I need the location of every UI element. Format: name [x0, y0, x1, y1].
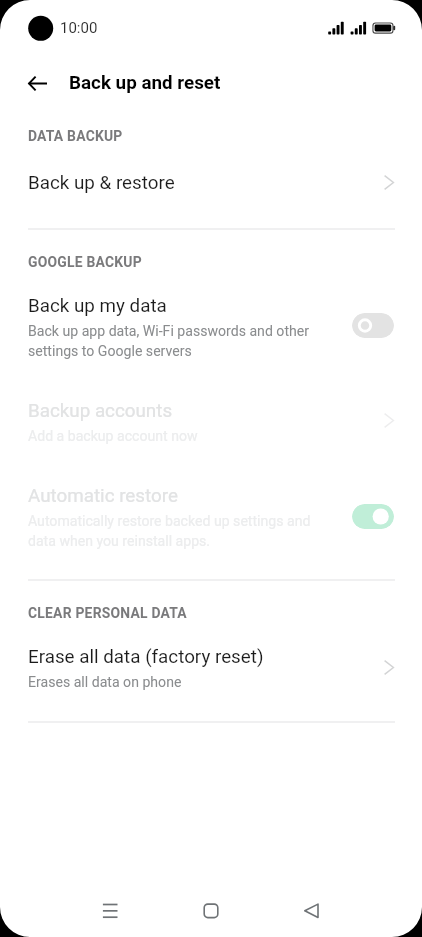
- button[interactable]: Back up my data: [0, 281, 422, 370]
- staticText: DATA BACKUP: [28, 128, 123, 144]
- staticText: Back up my data: [28, 295, 167, 317]
- staticText: GOOGLE BACKUP: [28, 254, 142, 270]
- staticText: Erase all data (factory reset): [28, 646, 264, 668]
- button[interactable]: Navigate up: [17, 63, 57, 103]
- button[interactable]: Backup accounts: [0, 383, 422, 458]
- staticText: Backup accounts: [28, 400, 173, 422]
- button[interactable]: Back: [281, 889, 341, 933]
- staticText: 10:00: [60, 19, 98, 37]
- button[interactable]: Back up & restore: [0, 155, 422, 208]
- button[interactable]: Recent apps: [80, 889, 140, 933]
- staticText: Back up app data, Wi-Fi passwords and ot…: [28, 323, 310, 360]
- button[interactable]: Erase all data (factory reset): [0, 630, 422, 704]
- button[interactable]: On: [352, 504, 394, 529]
- staticText: Back up & restore: [28, 172, 175, 194]
- staticText: Back up and reset: [69, 72, 221, 94]
- staticText: Automatically restore backed up settings…: [28, 513, 311, 550]
- button[interactable]: Home: [181, 889, 241, 933]
- button[interactable]: Off: [352, 313, 394, 338]
- button[interactable]: Automatic restore: [0, 470, 422, 560]
- staticText: Add a backup account now: [28, 428, 198, 445]
- staticText: Erases all data on phone: [28, 674, 182, 691]
- staticText: CLEAR PERSONAL DATA: [28, 605, 187, 621]
- staticText: Automatic restore: [28, 485, 178, 507]
